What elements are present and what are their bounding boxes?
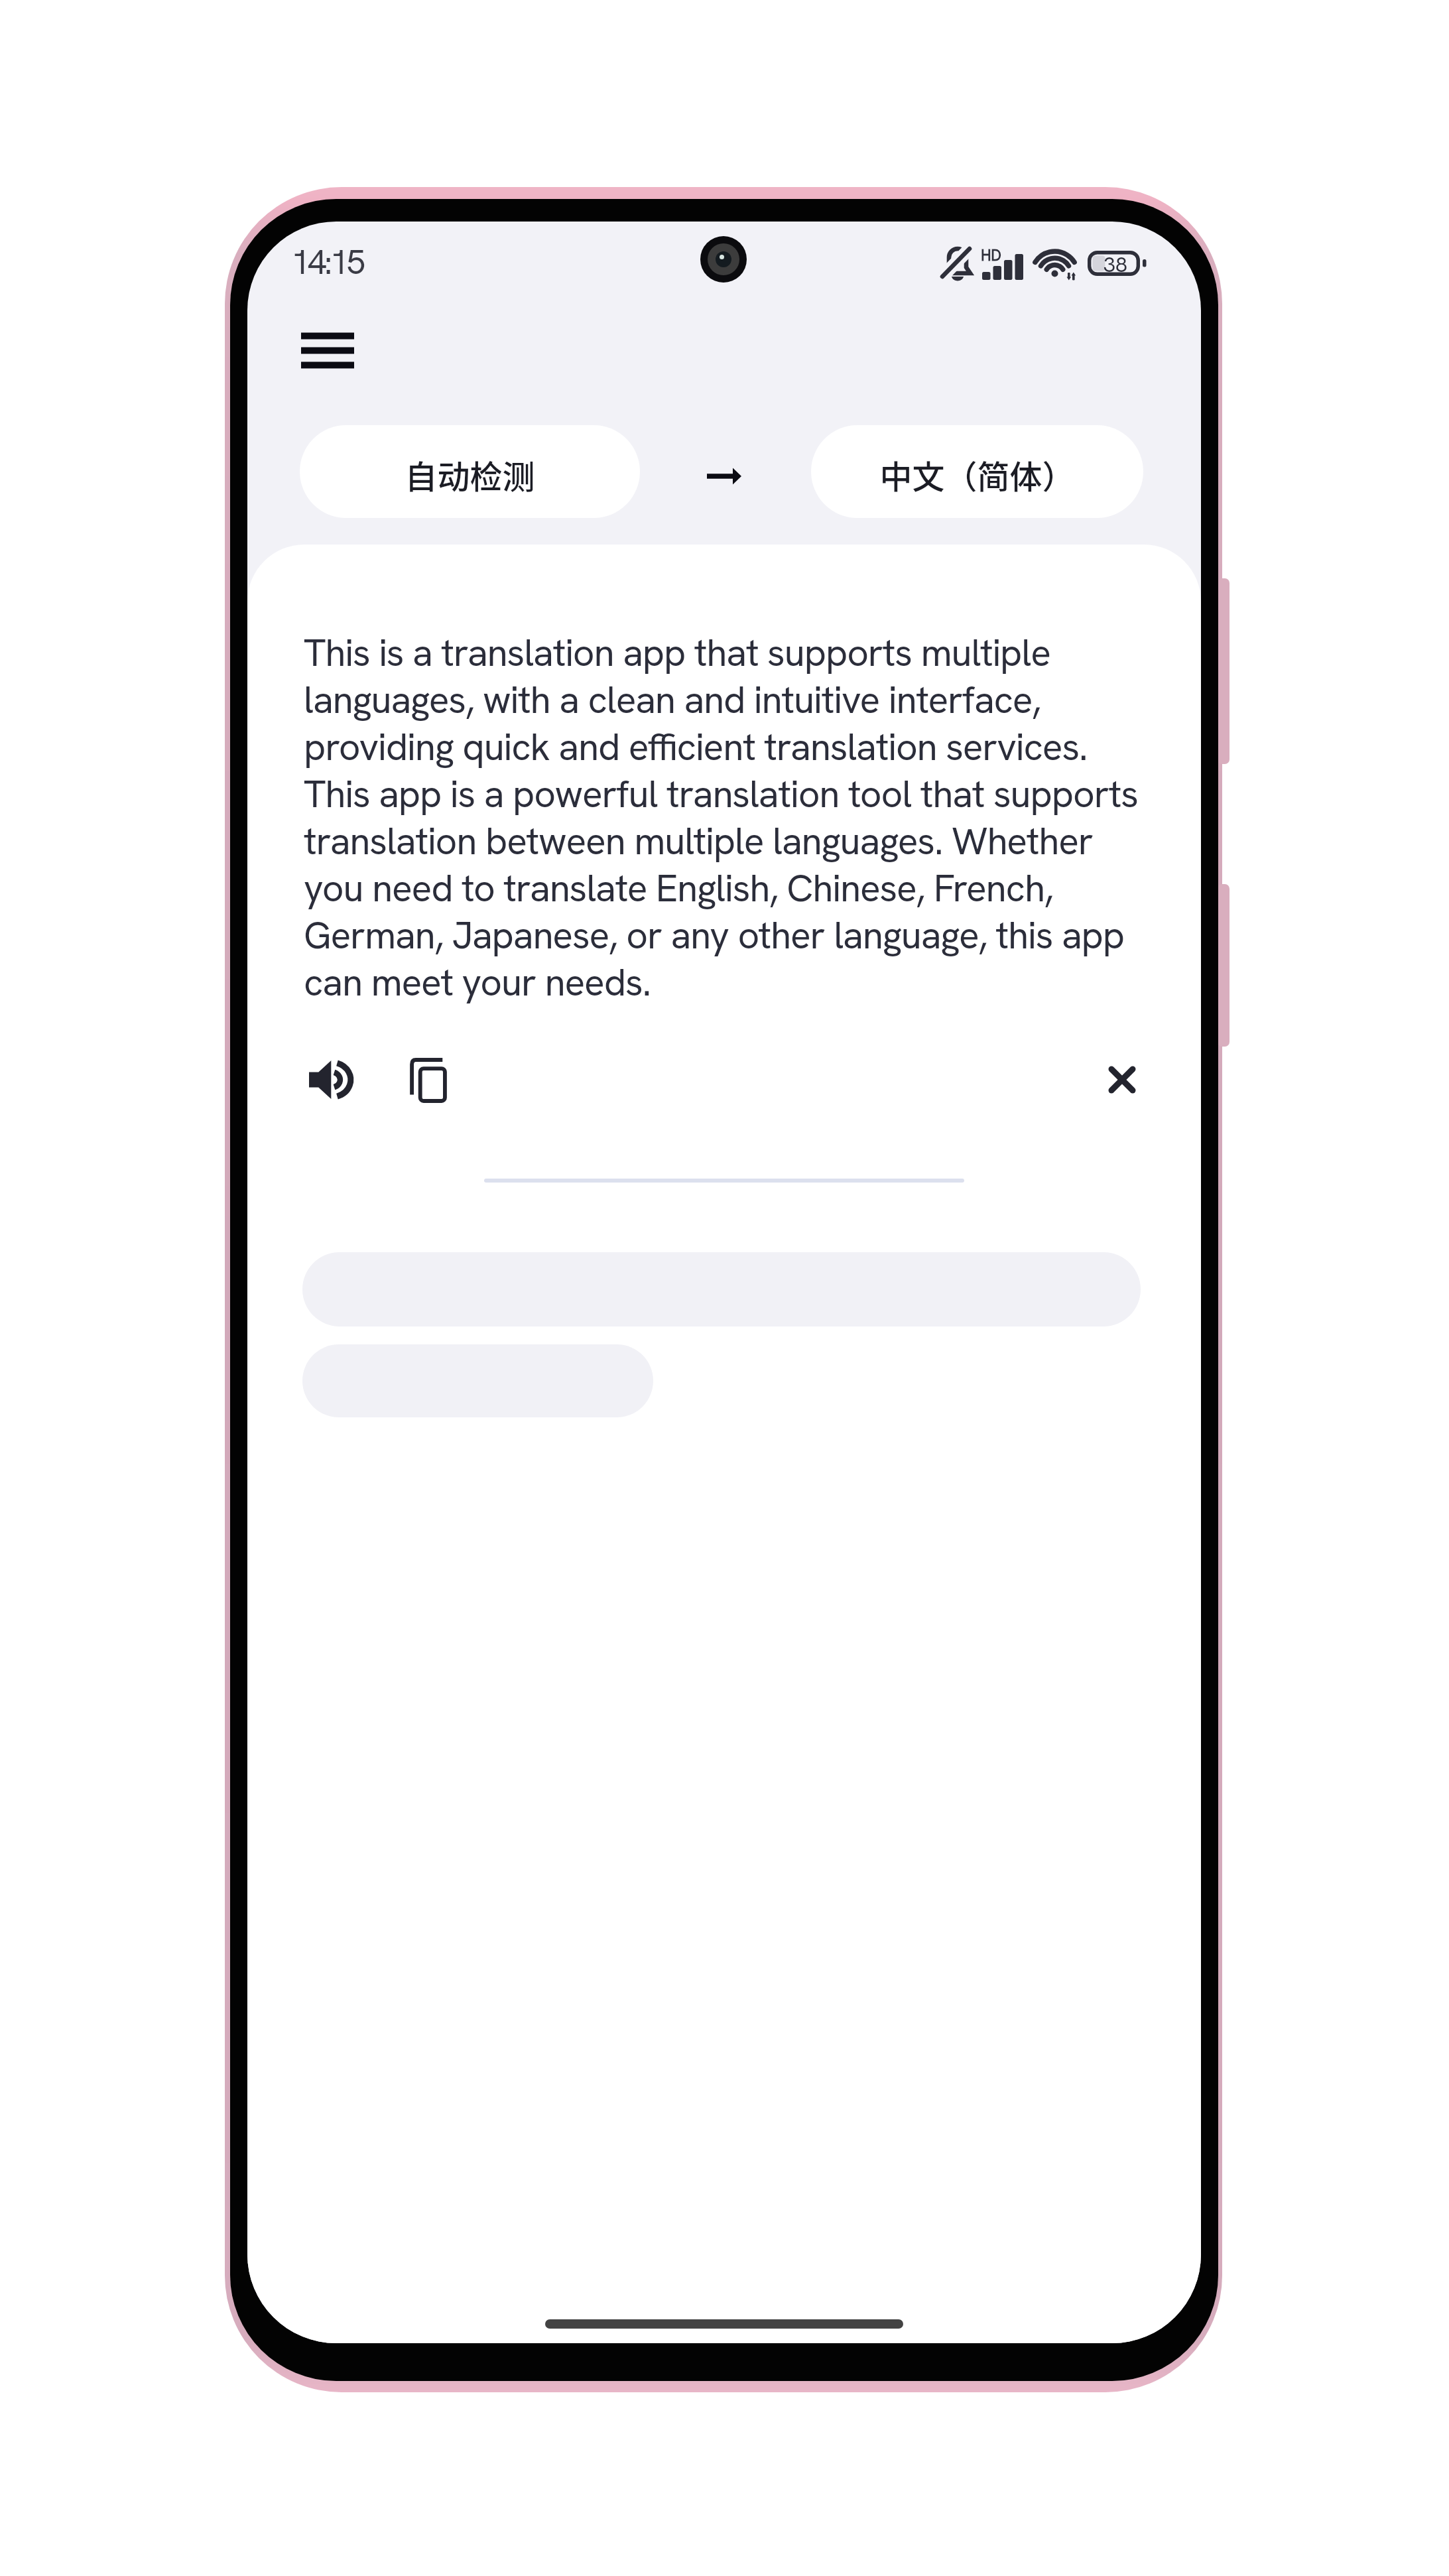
staticText: 自动检测 [405,451,535,498]
staticText: HD [981,245,1001,265]
staticText: 38 [1103,251,1127,279]
button[interactable]: Play translation [295,1043,368,1116]
staticText: 14:15 [291,240,363,284]
button[interactable]: Swap languages [705,446,742,506]
button[interactable]: 中文（简体） [811,425,1143,518]
button[interactable]: Open navigation menu [274,306,360,379]
staticText: This is a translation app that supports … [304,628,1159,1007]
button[interactable]: Clear text [1086,1043,1159,1116]
button[interactable]: 自动检测 [300,425,640,518]
staticText: 中文（简体） [879,451,1075,498]
button[interactable]: Copy translation [392,1043,465,1116]
